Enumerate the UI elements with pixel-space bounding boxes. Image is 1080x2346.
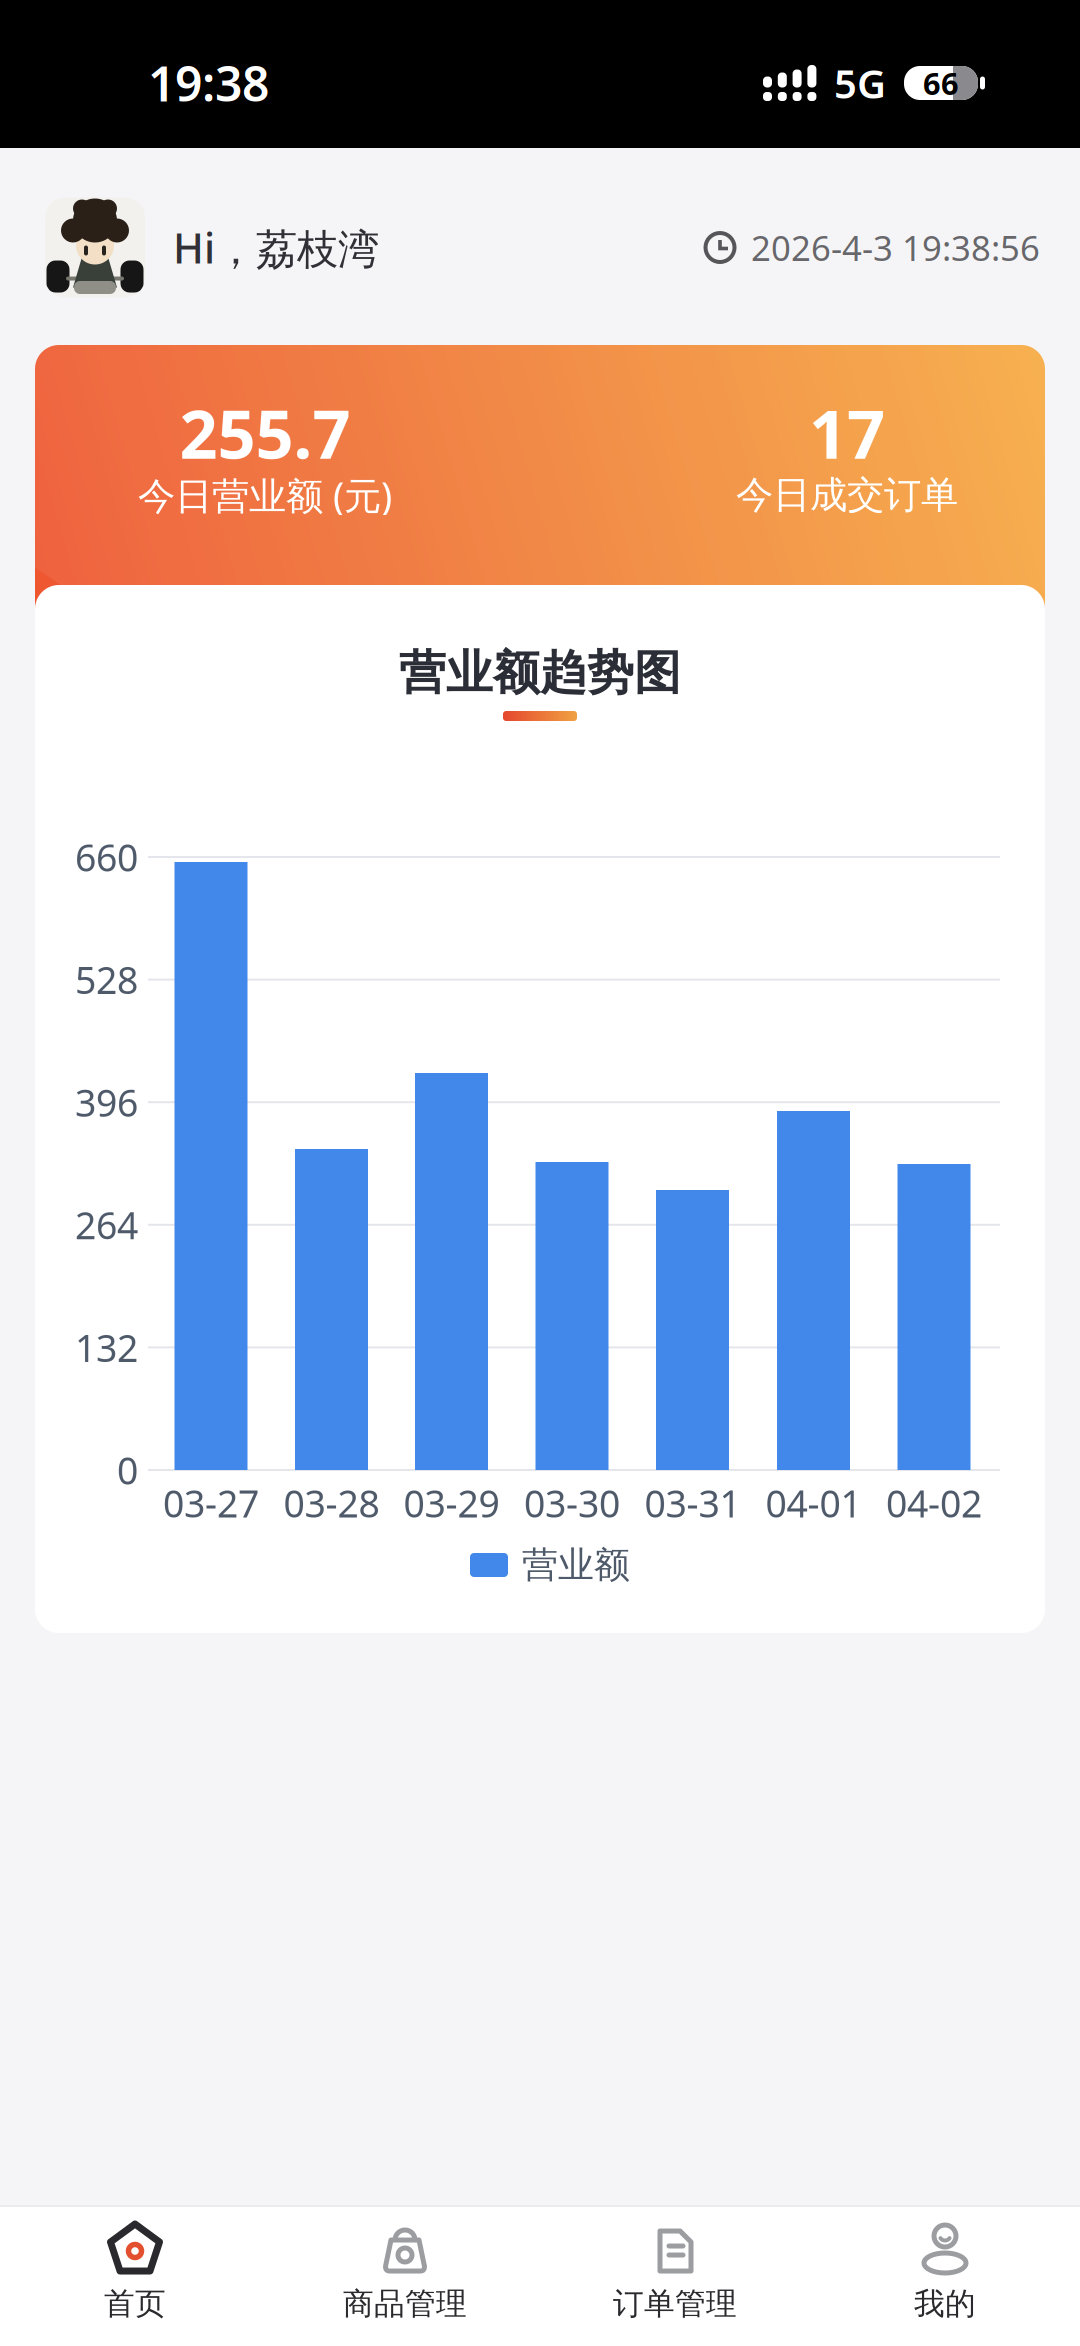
staticText: 17 (809, 389, 885, 477)
staticText: 5G (834, 56, 886, 109)
staticText: 营业额趋势图 (399, 644, 681, 702)
button[interactable]: 商品管理 (270, 2221, 540, 2323)
staticText: 255.7 (179, 389, 350, 477)
staticText: 我的 (914, 2285, 976, 2323)
staticText: 03-29 (403, 1478, 499, 1528)
staticText: 528 (75, 955, 138, 1004)
staticText: 396 (75, 1077, 138, 1127)
staticText: 今日成交订单 (736, 472, 958, 518)
button[interactable]: 我的 (810, 2221, 1080, 2323)
button[interactable]: 订单管理 (540, 2221, 810, 2323)
staticText: 2026-4-3 19:38:56 (751, 224, 1040, 270)
button[interactable]: 首页 (0, 2221, 270, 2323)
staticText: 660 (75, 832, 138, 882)
staticText: 03-28 (283, 1478, 379, 1528)
staticText: 04-01 (765, 1478, 861, 1528)
staticText: 19:38 (148, 51, 269, 115)
staticText: 132 (75, 1323, 138, 1372)
staticText: 04-02 (886, 1478, 982, 1528)
staticText: 商品管理 (343, 2285, 467, 2323)
staticText: Hi，荔枝湾 (173, 220, 379, 275)
staticText: 03-27 (163, 1478, 259, 1528)
staticText: 264 (75, 1200, 138, 1250)
staticText: 03-30 (524, 1478, 620, 1528)
staticText: 03-31 (644, 1478, 740, 1528)
staticText: 0 (117, 1445, 138, 1495)
staticText: 66 (923, 63, 959, 103)
staticText: 订单管理 (613, 2285, 737, 2323)
staticText: 首页 (104, 2285, 166, 2323)
staticText: 营业额 (522, 1543, 630, 1587)
staticText: 今日营业额 (元) (138, 470, 392, 520)
